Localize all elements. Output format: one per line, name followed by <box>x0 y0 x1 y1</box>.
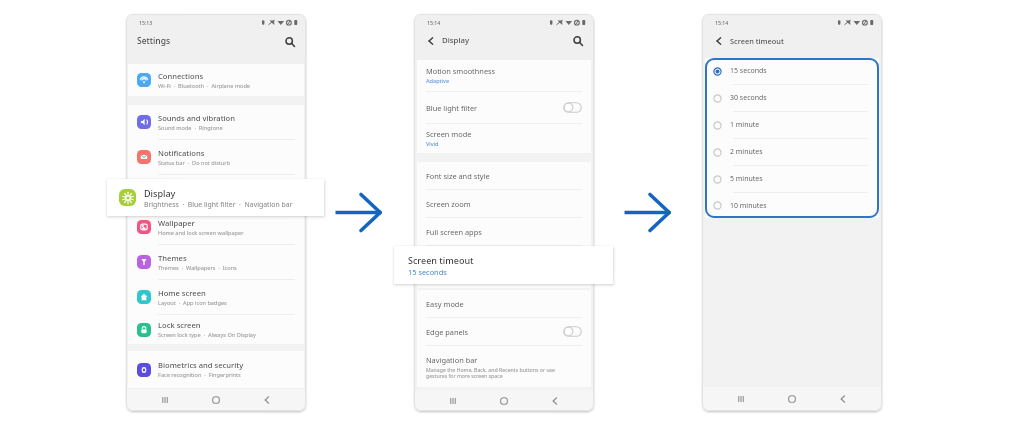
button[interactable]: 10 minutes <box>705 193 879 218</box>
staticText: Screen timeout <box>730 36 784 46</box>
button[interactable]: Recent apps <box>441 390 465 411</box>
staticText: Biometrics and security <box>158 360 244 370</box>
staticText: Face recognition · Fingerprints <box>158 371 241 379</box>
staticText: Navigation bar <box>426 355 478 365</box>
button[interactable]: Motion smoothness <box>417 60 591 91</box>
staticText: 15:14 <box>427 19 441 26</box>
staticText: Display <box>442 35 470 46</box>
button[interactable]: Home <box>780 387 804 411</box>
staticText: Screen lock type · Always On Display <box>158 331 256 339</box>
button[interactable]: Recent apps <box>153 389 177 411</box>
staticText: Connections <box>158 71 204 81</box>
button[interactable]: Easy mode <box>417 290 591 317</box>
button[interactable]: Edge panels <box>417 318 591 345</box>
staticText: 2 minutes <box>730 147 763 157</box>
staticText: 15 seconds <box>408 267 447 277</box>
staticText: Sound mode · Ringtone <box>158 124 223 132</box>
staticText: Edge panels <box>426 327 469 337</box>
staticText: Vivid <box>426 140 439 148</box>
staticText: Wallpaper <box>158 218 195 228</box>
button[interactable]: Back <box>543 390 567 411</box>
button[interactable]: Search <box>570 33 585 48</box>
staticText: 15 seconds <box>426 263 456 271</box>
button[interactable]: Wallpaper <box>128 210 304 244</box>
staticText: Themes <box>158 253 187 263</box>
button[interactable]: Lock screen <box>128 315 304 344</box>
staticText: Screen mode <box>426 129 472 139</box>
button[interactable]: Full screen apps <box>417 218 591 245</box>
button[interactable]: 1 minute <box>705 112 879 138</box>
staticText: 15:13 <box>139 19 153 26</box>
staticText: Display <box>144 187 176 199</box>
button[interactable]: Search <box>282 34 297 49</box>
button[interactable]: Home <box>204 389 228 411</box>
button[interactable]: Back <box>255 389 279 411</box>
button[interactable]: Font size and style <box>417 162 591 189</box>
button[interactable]: Screen zoom <box>417 190 591 217</box>
staticText: Layout · App icon badges <box>158 299 227 307</box>
staticText: 5 minutes <box>730 174 763 184</box>
staticText: 10 minutes <box>730 201 767 211</box>
button[interactable]: 2 minutes <box>705 139 879 165</box>
staticText: Blue light filter <box>426 103 478 113</box>
staticText: Screen timeout <box>426 252 479 262</box>
staticText: Brightness · Blue light filter · Navigat… <box>144 200 293 209</box>
button[interactable]: Toggle Blue light filter <box>563 102 582 113</box>
staticText: Home and lock screen wallpaper <box>158 229 244 237</box>
button[interactable]: Screen mode <box>417 124 591 153</box>
staticText: Screen timeout <box>408 254 474 266</box>
button[interactable]: Biometrics and security <box>128 351 304 388</box>
button[interactable]: Navigate up <box>425 35 436 46</box>
staticText: Font size and style <box>426 171 490 181</box>
staticText: Screen zoom <box>426 199 471 209</box>
button[interactable]: 5 minutes <box>705 166 879 192</box>
staticText: Sounds and vibration <box>158 113 236 123</box>
button[interactable]: Blue light filter <box>417 92 591 123</box>
button[interactable]: Recent apps <box>729 387 753 411</box>
staticText: Easy mode <box>426 299 464 309</box>
staticText: Motion smoothness <box>426 66 496 76</box>
button[interactable]: Display <box>107 179 324 216</box>
staticText: 15 seconds <box>730 66 767 76</box>
staticText: Notifications <box>158 148 205 158</box>
button[interactable]: Notifications <box>128 140 304 174</box>
button[interactable]: Navigation bar <box>417 346 591 387</box>
staticText: Manage the Home, Back, and Recents butto… <box>426 366 556 379</box>
button[interactable]: Screen timeout <box>417 246 591 277</box>
button[interactable]: Connections <box>128 64 304 96</box>
staticText: Full screen apps <box>426 227 482 237</box>
button[interactable]: Back <box>831 387 855 411</box>
staticText: Lock screen <box>158 320 201 330</box>
staticText: 15:14 <box>715 19 729 26</box>
staticText: Adaptive <box>426 77 450 85</box>
staticText: Status bar · Do not disturb <box>158 159 231 167</box>
button[interactable]: Toggle Edge panels <box>563 326 582 337</box>
button[interactable]: Home <box>492 390 516 411</box>
staticText: Themes · Wallpapers · Icons <box>158 264 237 272</box>
staticText: 1 minute <box>730 120 760 130</box>
button[interactable]: Sounds and vibration <box>128 105 304 139</box>
staticText: Home screen <box>158 288 206 298</box>
button[interactable]: Navigate up <box>713 35 724 46</box>
staticText: 30 seconds <box>730 93 767 103</box>
staticText: Wi-Fi · Bluetooth · Airplane mode <box>158 82 251 90</box>
button[interactable]: 30 seconds <box>705 85 879 111</box>
button[interactable]: Screen timeout <box>394 246 613 284</box>
button[interactable]: Themes <box>128 245 304 279</box>
button[interactable]: 15 seconds <box>705 58 879 84</box>
button[interactable]: Home screen <box>128 280 304 314</box>
staticText: Settings <box>137 35 171 47</box>
